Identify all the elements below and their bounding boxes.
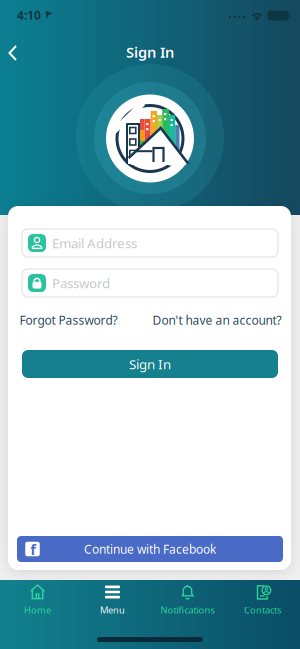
staticText: Password (52, 274, 110, 292)
staticText: Notifications (160, 604, 214, 616)
staticText: Continue with Facebook (84, 541, 216, 557)
staticText: Forgot Password? (19, 312, 117, 328)
staticText: Email Address (52, 234, 137, 252)
button[interactable]: Home (0, 577, 75, 631)
staticText: Home (24, 604, 51, 616)
button[interactable]: Password (22, 269, 278, 297)
staticText: Contacts (244, 604, 281, 616)
staticText: Sign In (129, 355, 171, 373)
staticText: f (30, 539, 36, 559)
button[interactable]: Notifications (150, 577, 225, 631)
button[interactable]: Email Address (22, 229, 278, 257)
staticText: Don't have an account? (152, 312, 281, 328)
button[interactable]: Forgot Password? (19, 312, 117, 328)
button[interactable]: Sign In (22, 350, 278, 378)
button[interactable]: Back (5, 43, 25, 63)
staticText: Sign In (126, 42, 174, 62)
button[interactable]: Menu (75, 577, 150, 631)
button[interactable]: f (17, 536, 283, 562)
button[interactable]: Don't have an account? (152, 312, 281, 328)
button[interactable]: Contacts (225, 577, 300, 631)
staticText: 4:10 (17, 7, 41, 23)
staticText: Menu (100, 604, 125, 616)
